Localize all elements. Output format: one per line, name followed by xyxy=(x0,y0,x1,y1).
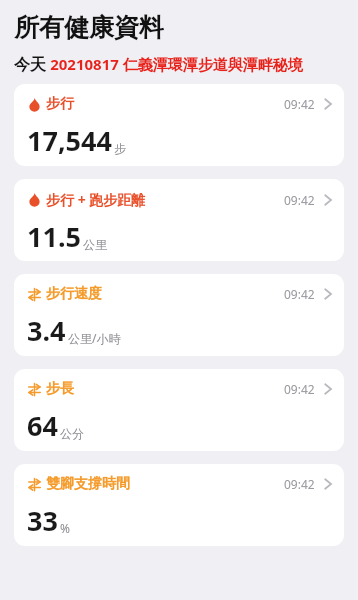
staticText: 64 xyxy=(27,407,58,444)
staticText: % xyxy=(60,520,70,536)
staticText: 雙腳支撐時間 xyxy=(46,475,130,493)
button[interactable]: Activity flame xyxy=(14,179,344,261)
staticText: 17,544 xyxy=(27,122,112,159)
other: Activity flame xyxy=(27,97,42,112)
staticText: 公分 xyxy=(60,426,84,441)
other: Activity flame xyxy=(27,192,42,207)
staticText: 今天 20210817 仁義潭環潭步道與潭畔秘境 xyxy=(14,53,303,75)
staticText: 步行 xyxy=(46,95,74,113)
staticText: 公里/小時 xyxy=(68,330,121,346)
button[interactable]: Walking metric xyxy=(14,274,344,356)
button[interactable]: Walking metric xyxy=(14,464,344,546)
staticText: 09:42 xyxy=(284,96,315,112)
staticText: 步行 + 跑步距離 xyxy=(46,190,146,209)
other: Open details xyxy=(324,382,332,396)
staticText: 步 xyxy=(114,141,126,156)
button[interactable]: Walking metric xyxy=(14,369,344,451)
staticText: 步行速度 xyxy=(46,285,102,303)
other: Open details xyxy=(324,287,332,301)
other: Open details xyxy=(324,97,332,111)
other: Walking metric xyxy=(27,287,42,302)
staticText: 11.5 xyxy=(27,218,81,255)
button[interactable]: Activity flame xyxy=(14,84,344,166)
staticText: 公里 xyxy=(83,237,107,252)
other: Open details xyxy=(324,193,332,207)
other: Walking metric xyxy=(27,477,42,492)
staticText: 33 xyxy=(27,502,58,539)
other: Walking metric xyxy=(27,382,42,397)
staticText: 09:42 xyxy=(284,381,315,397)
staticText: 09:42 xyxy=(284,286,315,302)
staticText: 步長 xyxy=(46,380,74,398)
staticText: 09:42 xyxy=(284,192,315,208)
other: Open details xyxy=(324,477,332,491)
staticText: 3.4 xyxy=(27,312,66,349)
staticText: 所有健康資料 xyxy=(14,12,164,43)
staticText: 09:42 xyxy=(284,476,315,492)
